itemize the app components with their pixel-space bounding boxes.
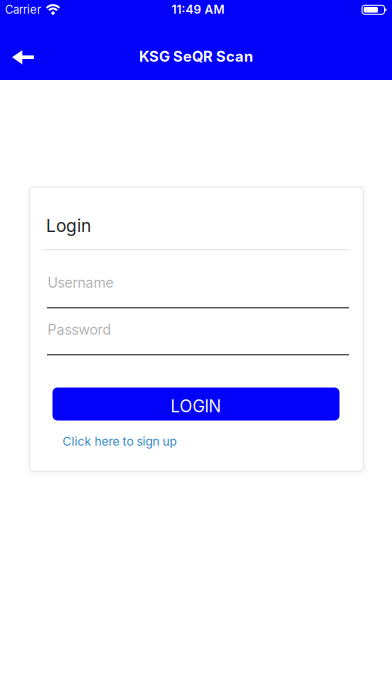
staticText: Password [47, 321, 111, 338]
staticText: Username [47, 274, 113, 291]
staticText: Login [46, 215, 91, 236]
button[interactable]: Back [3, 40, 43, 74]
button[interactable]: Click here to sign up [62, 434, 176, 448]
staticText: 11:49 AM [171, 2, 224, 17]
button[interactable]: LOGIN [52, 387, 339, 420]
staticText: KSG SeQR Scan [139, 47, 253, 65]
staticText: Click here to sign up [62, 434, 176, 448]
staticText: LOGIN [170, 396, 221, 416]
staticText: Carrier [5, 3, 41, 16]
